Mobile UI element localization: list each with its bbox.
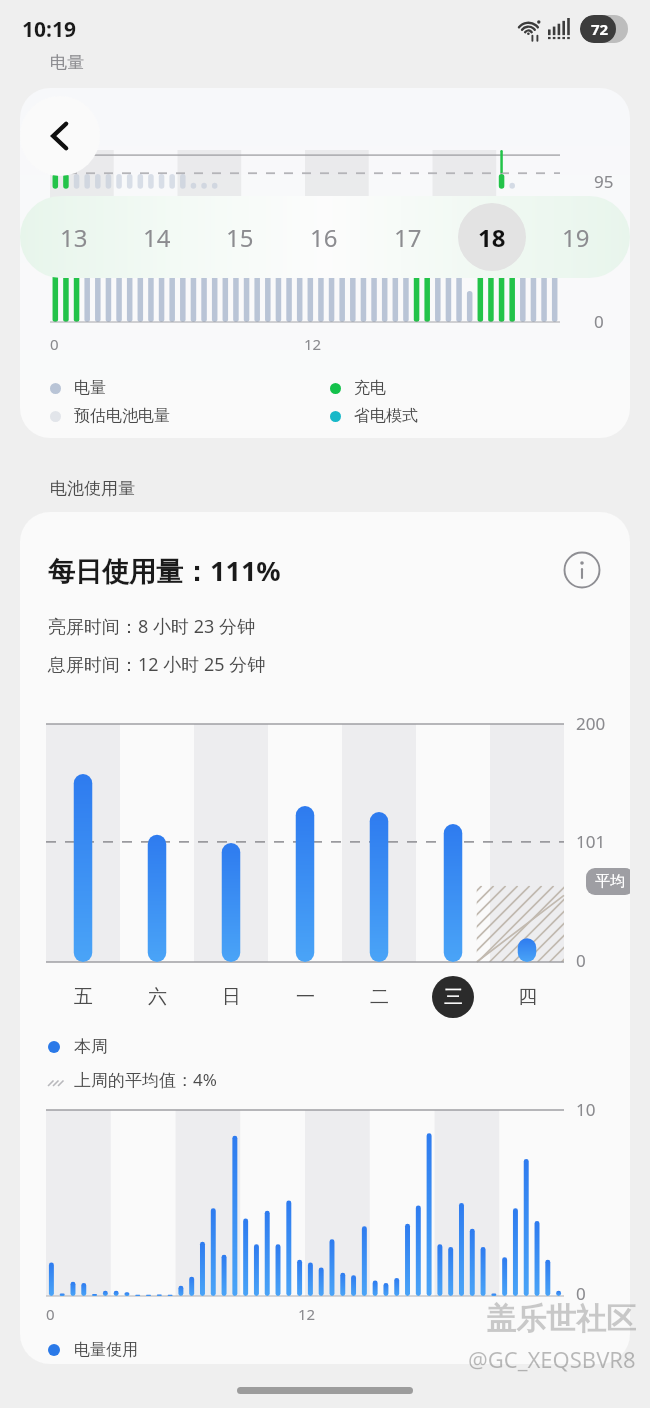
- button[interactable]: Back: [20, 96, 100, 176]
- staticText: 72: [591, 19, 609, 39]
- staticText: 日: [222, 985, 241, 1009]
- button[interactable]: 15: [198, 196, 282, 278]
- staticText: 12: [298, 1304, 316, 1324]
- staticText: 平均: [595, 872, 625, 891]
- staticText: 息屏时间：12 小时 25 分钟: [48, 652, 266, 677]
- staticText: 10:19: [22, 15, 76, 44]
- staticText: 0: [46, 1304, 55, 1324]
- button[interactable]: 13: [32, 196, 115, 278]
- staticText: 13: [60, 221, 88, 254]
- button[interactable]: 六: [120, 974, 194, 1020]
- staticText: 电量使用: [74, 1340, 138, 1360]
- staticText: 六: [148, 985, 167, 1009]
- staticText: 盖乐世社区: [486, 1300, 636, 1338]
- staticText: 电池使用量: [50, 478, 135, 499]
- button[interactable]: 五: [46, 974, 120, 1020]
- button[interactable]: 18: [450, 196, 534, 278]
- button[interactable]: 14: [115, 196, 198, 278]
- staticText: 0: [576, 1282, 586, 1305]
- staticText: 上周的平均值：4%: [74, 1068, 217, 1091]
- button[interactable]: 三: [416, 974, 490, 1020]
- staticText: 充电: [354, 378, 386, 398]
- staticText: 四: [518, 985, 537, 1009]
- staticText: 95: [594, 170, 614, 193]
- staticText: 18: [478, 221, 506, 254]
- staticText: 12: [304, 334, 322, 354]
- staticText: 101: [576, 830, 606, 853]
- staticText: 14: [143, 221, 171, 254]
- button[interactable]: 16: [282, 196, 366, 278]
- button[interactable]: 17: [366, 196, 450, 278]
- staticText: 电量: [74, 378, 106, 398]
- button[interactable]: 二: [342, 974, 416, 1020]
- staticText: 省电模式: [354, 406, 418, 426]
- staticText: 五: [74, 985, 93, 1009]
- staticText: 亮屏时间：8 小时 23 分钟: [48, 614, 255, 639]
- staticText: 每日使用量：111%: [48, 552, 281, 589]
- button[interactable]: 四: [490, 974, 564, 1020]
- staticText: 二: [370, 985, 389, 1009]
- staticText: 电量: [50, 52, 84, 73]
- staticText: @GC_XEQSBVR8: [468, 1344, 636, 1374]
- staticText: 0: [576, 949, 586, 972]
- staticText: 200: [576, 712, 606, 735]
- staticText: 三: [444, 985, 463, 1009]
- button[interactable]: 一: [268, 974, 342, 1020]
- staticText: 19: [562, 221, 590, 254]
- staticText: 0: [50, 334, 59, 354]
- staticText: 本周: [74, 1036, 108, 1057]
- staticText: 16: [310, 221, 338, 254]
- button[interactable]: 日: [194, 974, 268, 1020]
- staticText: 17: [394, 221, 422, 254]
- staticText: 15: [226, 221, 254, 254]
- staticText: 预估电池电量: [74, 406, 170, 426]
- button[interactable]: Info: [558, 546, 606, 594]
- staticText: 10: [576, 1098, 596, 1121]
- staticText: 0: [594, 310, 604, 333]
- staticText: 一: [296, 985, 315, 1009]
- button[interactable]: 19: [534, 196, 618, 278]
